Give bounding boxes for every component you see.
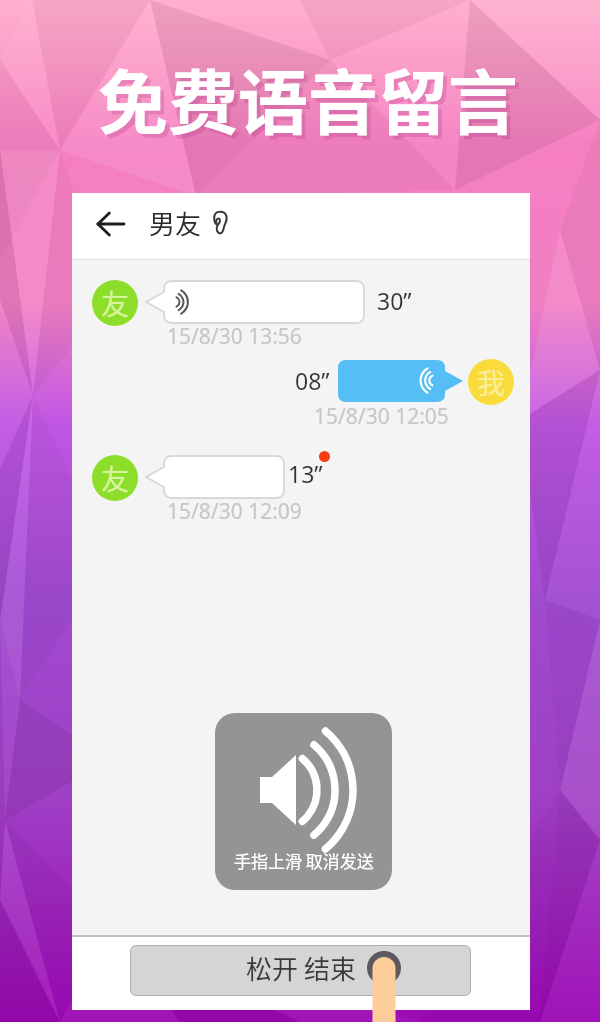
- button[interactable]: 松开 结束: [130, 945, 471, 996]
- button[interactable]: Back: [94, 203, 128, 245]
- staticText: 08”: [295, 365, 330, 396]
- button[interactable]: 友: [92, 455, 138, 501]
- staticText: 15/8/30 12:05: [314, 402, 449, 431]
- staticText: 友: [101, 283, 130, 324]
- staticText: 15/8/30 12:09: [167, 497, 302, 526]
- staticText: 松开 结束: [246, 949, 356, 987]
- staticText: 手指上滑 取消发送: [234, 848, 374, 873]
- button[interactable]: 友: [92, 280, 138, 326]
- button[interactable]: Voice message: [146, 281, 364, 323]
- staticText: 友: [101, 458, 130, 499]
- staticText: 男友: [149, 204, 202, 242]
- button[interactable]: Recording: [215, 713, 392, 890]
- staticText: 15/8/30 13:56: [167, 322, 302, 351]
- button[interactable]: Voice message: [338, 360, 463, 402]
- staticText: 免费语音留言: [98, 48, 518, 149]
- staticText: 免费语音留言: [102, 52, 522, 153]
- staticText: 我: [477, 362, 506, 403]
- staticText: 30”: [377, 285, 412, 316]
- staticText: 13”: [288, 458, 323, 489]
- button[interactable]: Voice message: [146, 456, 284, 498]
- button[interactable]: 我: [468, 359, 514, 405]
